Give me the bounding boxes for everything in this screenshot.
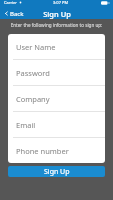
staticText: User Name xyxy=(16,42,56,52)
staticText: Password xyxy=(16,68,50,78)
staticText: Sign Up xyxy=(44,167,70,177)
staticText: Phone number xyxy=(16,146,69,156)
staticText: Back xyxy=(10,10,24,17)
button[interactable]: Back xyxy=(3,8,25,19)
button[interactable]: Password xyxy=(8,60,105,85)
staticText: Sign Up xyxy=(43,9,71,19)
staticText: 3:07 PM xyxy=(53,0,69,5)
button[interactable]: Email xyxy=(8,112,105,137)
button[interactable]: Sign Up xyxy=(8,166,105,177)
button[interactable]: User Name xyxy=(8,34,105,59)
staticText: Carrier xyxy=(4,0,18,5)
staticText: Email xyxy=(16,120,36,130)
staticText: Enter the following information to sign … xyxy=(8,22,105,28)
staticText: Company xyxy=(16,94,50,104)
button[interactable]: Phone number xyxy=(8,138,105,163)
button[interactable]: Company xyxy=(8,86,105,111)
